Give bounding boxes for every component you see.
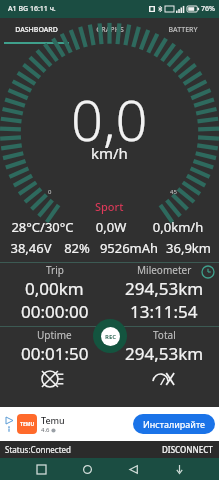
staticText: 45 xyxy=(170,188,177,196)
button[interactable]: TEMU xyxy=(0,407,219,441)
staticText: Uptime xyxy=(37,328,72,342)
button[interactable]: BATTERY xyxy=(146,18,219,42)
staticText: 36,9km xyxy=(162,239,215,257)
button[interactable]: DASHBOARD xyxy=(0,18,73,42)
staticText: 82% xyxy=(58,239,96,257)
staticText: 0 xyxy=(48,188,52,196)
staticText: GRAPHS xyxy=(96,25,124,35)
staticText: DASHBOARD xyxy=(15,25,58,35)
staticText: Trip xyxy=(46,263,64,277)
button[interactable]: Инсталирайте xyxy=(143,414,205,434)
staticText: Инсталирайте xyxy=(143,418,205,430)
staticText: 294,53km xyxy=(125,277,204,300)
button[interactable]: Home xyxy=(72,458,102,480)
staticText: 0,0km/h xyxy=(143,218,213,236)
staticText: BATTERY xyxy=(168,25,198,35)
button[interactable]: Recent apps xyxy=(26,458,56,480)
staticText: Total xyxy=(153,328,176,342)
staticText: Sport xyxy=(95,199,124,214)
button[interactable]: DISCONNECT xyxy=(156,441,219,458)
staticText: Temu xyxy=(41,414,65,426)
button[interactable]: Record xyxy=(93,319,127,353)
button[interactable]: Back xyxy=(118,458,148,480)
staticText: km/h xyxy=(91,143,128,163)
staticText: 0,00km xyxy=(25,277,84,300)
staticText: 28°C/30°C xyxy=(6,218,79,236)
staticText: DISCONNECT xyxy=(162,444,213,455)
staticText: 00:00:00 xyxy=(21,300,89,323)
staticText: 76% xyxy=(201,4,215,14)
button[interactable]: Hide keyboard xyxy=(164,458,194,480)
staticText: 294,53km xyxy=(125,342,204,365)
staticText: 00:01:50 xyxy=(21,342,89,365)
button[interactable]: History xyxy=(201,265,215,279)
staticText: 4.6 xyxy=(41,426,50,434)
staticText: A1 BG 16:11 ч. xyxy=(8,4,56,14)
staticText: 0,0 xyxy=(71,81,148,157)
staticText: Status:Connected xyxy=(5,444,72,455)
staticText: 0,0W xyxy=(79,218,143,236)
staticText: REC xyxy=(105,333,117,341)
staticText: TEMU xyxy=(20,421,35,428)
staticText: 38,46V xyxy=(4,239,58,257)
button[interactable]: Headlight off xyxy=(0,365,109,393)
staticText: Mileometer xyxy=(137,263,192,277)
button[interactable]: GRAPHS xyxy=(73,18,146,42)
staticText: 9526mAh xyxy=(96,239,162,257)
staticText: 13:11:54 xyxy=(130,300,198,323)
button[interactable]: Cruise control off xyxy=(109,365,219,393)
